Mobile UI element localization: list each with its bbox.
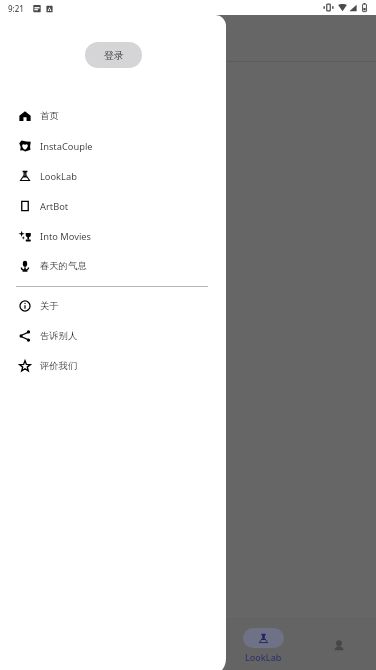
button[interactable]: LookLab	[226, 619, 301, 670]
button[interactable]: 春天的气息	[0, 251, 226, 281]
staticText: 关于	[40, 300, 59, 312]
staticText: 首页	[40, 110, 59, 122]
staticText: 告诉别人	[40, 330, 78, 342]
staticText: ArtBot	[40, 200, 69, 213]
staticText: Into Movies	[40, 230, 91, 243]
button[interactable]: ArtBot	[0, 191, 226, 221]
button[interactable]: InstaCouple	[0, 131, 226, 161]
button[interactable]: 登录	[85, 42, 142, 68]
button[interactable]: 告诉别人	[0, 321, 226, 351]
button[interactable]: Into Movies	[0, 221, 226, 251]
staticText: 评价我们	[40, 360, 78, 372]
staticText: InstaCouple	[40, 140, 93, 153]
staticText: 登录	[104, 49, 124, 62]
button[interactable]: 评价我们	[0, 351, 226, 381]
button[interactable]: LookLab	[0, 161, 226, 191]
button[interactable]: Profile	[301, 619, 376, 670]
button[interactable]: 首页	[0, 101, 226, 131]
staticText: LookLab	[40, 170, 77, 183]
staticText: LookLab	[245, 651, 282, 663]
staticText: 春天的气息	[40, 260, 87, 272]
button[interactable]: 关于	[0, 291, 226, 321]
staticText: 9:21	[8, 3, 24, 14]
